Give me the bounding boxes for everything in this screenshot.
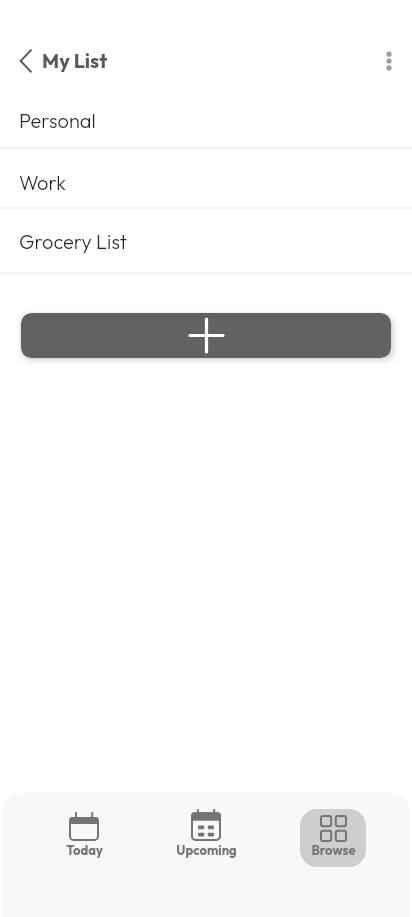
staticText: Work [19,170,66,195]
button[interactable]: Back [6,41,46,81]
button[interactable]: Upcoming [173,809,239,867]
staticText: Grocery List [19,229,127,254]
staticText: My List [42,48,108,73]
button[interactable]: Add list [21,313,391,358]
button[interactable]: Personal [0,88,412,149]
staticText: Today [66,842,103,858]
staticText: Personal [19,108,96,133]
button[interactable]: Browse [300,809,366,867]
button[interactable]: Grocery List [0,209,412,274]
button[interactable]: Today [51,809,117,867]
button[interactable]: Work [0,149,412,209]
staticText: Upcoming [176,842,237,858]
button[interactable]: More options [369,41,409,81]
staticText: Browse [311,842,356,858]
